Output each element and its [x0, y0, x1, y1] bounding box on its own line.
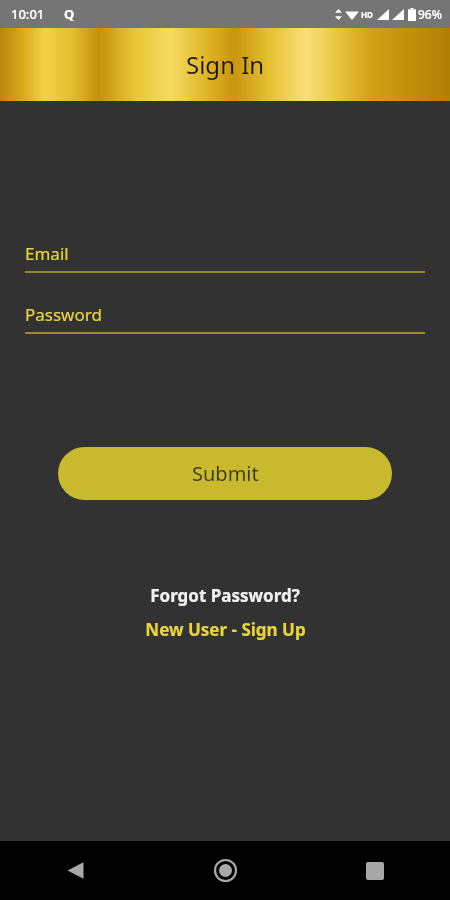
- staticText: 10:01: [11, 5, 45, 23]
- button[interactable]: Forgot Password?: [144, 583, 306, 608]
- staticText: 96%: [418, 6, 442, 22]
- button[interactable]: Back: [0, 841, 150, 900]
- button[interactable]: Password: [25, 296, 425, 334]
- staticText: Sign In: [186, 48, 265, 81]
- staticText: Forgot Password?: [150, 584, 300, 607]
- staticText: Email: [25, 242, 69, 265]
- staticText: HD: [361, 9, 373, 20]
- staticText: Q: [64, 5, 75, 23]
- button[interactable]: Home: [150, 841, 300, 900]
- button[interactable]: Submit: [58, 447, 392, 500]
- button[interactable]: Recent apps: [300, 841, 450, 900]
- button[interactable]: New User - Sign Up: [139, 617, 312, 642]
- staticText: Submit: [192, 460, 259, 487]
- button[interactable]: Email: [25, 235, 425, 273]
- staticText: Password: [25, 303, 102, 326]
- staticText: New User - Sign Up: [145, 618, 306, 641]
